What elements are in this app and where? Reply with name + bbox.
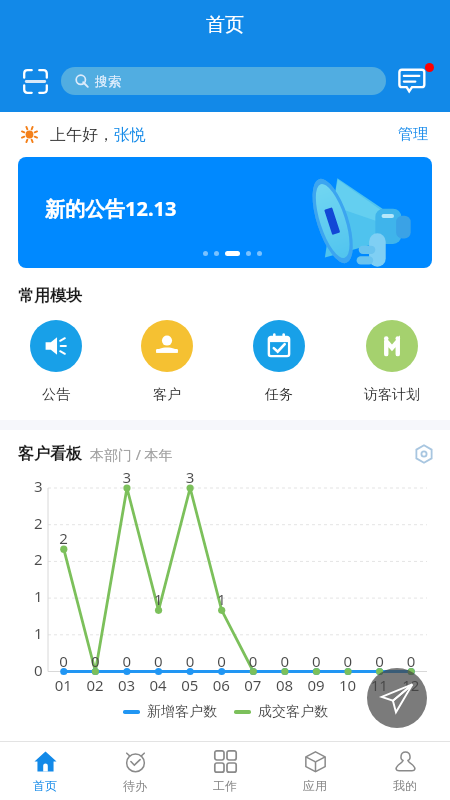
staticText: 常用模块 <box>18 286 82 306</box>
button[interactable]: 应用 <box>270 745 360 798</box>
staticText: 任务 <box>265 386 293 404</box>
staticText: 管理 <box>398 125 428 144</box>
button[interactable]: Send <box>367 668 427 728</box>
button[interactable]: Settings <box>414 444 434 464</box>
staticText: 首页 <box>206 13 244 37</box>
button[interactable]: Messages <box>398 63 434 99</box>
staticText: 新增客户数 <box>147 703 217 721</box>
button[interactable]: 访客计划 <box>358 320 426 404</box>
button[interactable]: 新的公告12.13 <box>18 157 432 268</box>
button[interactable]: 工作 <box>180 745 270 798</box>
button[interactable]: 搜索 <box>61 67 386 95</box>
staticText: 张悦 <box>114 125 146 145</box>
staticText: 客户看板 <box>18 444 82 464</box>
staticText: 访客计划 <box>364 386 420 404</box>
staticText: 成交客户数 <box>258 703 328 721</box>
button[interactable]: 我的 <box>360 745 450 798</box>
staticText: 公告 <box>42 386 70 404</box>
staticText: 上午好， <box>50 125 114 145</box>
button[interactable]: Scan <box>18 64 52 98</box>
staticText: 待办 <box>123 778 147 793</box>
staticText: 新的公告12.13 <box>45 195 177 222</box>
staticText: 客户 <box>153 386 181 404</box>
button[interactable]: 公告 <box>24 320 88 404</box>
staticText: 应用 <box>303 778 327 793</box>
button[interactable]: 客户 <box>135 320 199 404</box>
button[interactable]: 首页 <box>0 745 90 798</box>
staticText: 搜索 <box>95 73 121 89</box>
staticText: 工作 <box>213 778 237 793</box>
staticText: 首页 <box>33 778 57 793</box>
button[interactable]: 任务 <box>247 320 311 404</box>
staticText: 本部门 / 本年 <box>90 445 173 464</box>
button[interactable]: 管理 <box>398 125 428 144</box>
staticText: 我的 <box>393 778 417 793</box>
button[interactable]: 待办 <box>90 745 180 798</box>
